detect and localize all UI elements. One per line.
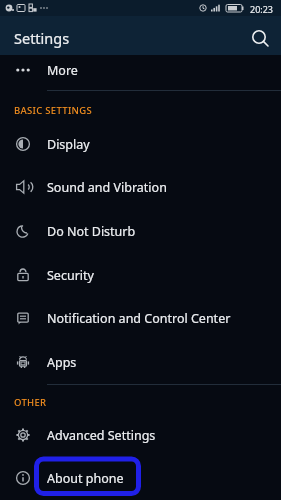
- button[interactable]: About phone: [0, 456, 281, 500]
- button[interactable]: More: [0, 48, 281, 92]
- staticText: Settings: [14, 28, 70, 48]
- staticText: Security: [47, 267, 94, 284]
- button[interactable]: Display: [0, 122, 281, 166]
- staticText: Sound and Vibration: [47, 179, 167, 196]
- button[interactable]: Apps: [0, 340, 281, 384]
- staticText: About phone: [47, 470, 124, 487]
- staticText: Do Not Disturb: [47, 223, 136, 240]
- staticText: OTHER: [14, 396, 47, 409]
- staticText: More: [47, 62, 78, 79]
- staticText: BASIC SETTINGS: [14, 104, 92, 117]
- button[interactable]: Security: [0, 253, 281, 297]
- staticText: Advanced Settings: [47, 427, 156, 444]
- button[interactable]: Advanced Settings: [0, 413, 281, 457]
- staticText: Display: [47, 136, 90, 153]
- staticText: 20:23: [250, 3, 274, 15]
- staticText: Apps: [47, 354, 77, 371]
- button[interactable]: Do Not Disturb: [0, 209, 281, 253]
- button[interactable]: [246, 22, 274, 50]
- staticText: Notification and Control Center: [47, 310, 231, 327]
- button[interactable]: Sound and Vibration: [0, 165, 281, 209]
- button[interactable]: Notification and Control Center: [0, 296, 281, 340]
